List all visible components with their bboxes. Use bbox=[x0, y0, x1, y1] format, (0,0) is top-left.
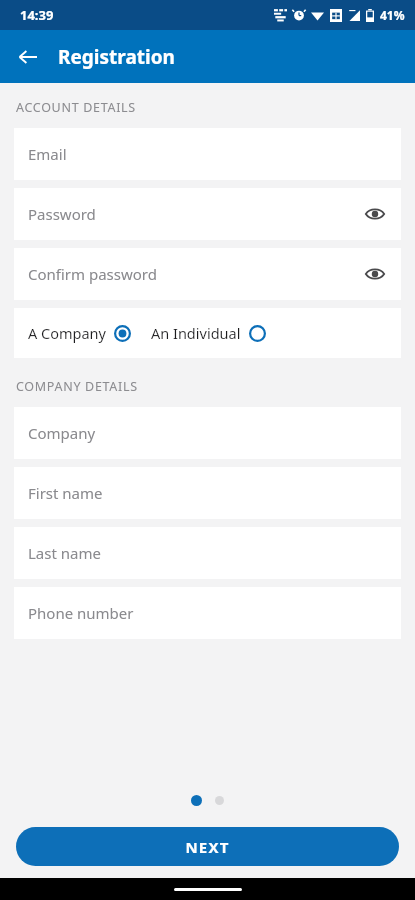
staticText: Email bbox=[28, 144, 67, 164]
button[interactable]: Back bbox=[10, 39, 46, 75]
staticText: Confirm password bbox=[28, 264, 157, 284]
staticText: Password bbox=[28, 204, 96, 224]
staticText: First name bbox=[28, 483, 103, 503]
staticText: 41% bbox=[380, 7, 405, 23]
button[interactable]: First name bbox=[14, 467, 401, 519]
staticText: Registration bbox=[58, 44, 175, 70]
button[interactable]: Confirm password bbox=[14, 248, 401, 300]
button[interactable]: NEXT bbox=[16, 827, 399, 866]
staticText: A Company bbox=[28, 323, 106, 343]
button[interactable]: Show password bbox=[357, 196, 393, 232]
button[interactable]: Password bbox=[14, 188, 401, 240]
button[interactable]: Phone number bbox=[14, 587, 401, 639]
button[interactable]: Email bbox=[14, 128, 401, 180]
staticText: An Individual bbox=[151, 323, 241, 343]
staticText: Phone number bbox=[28, 603, 134, 623]
staticText: 14:39 bbox=[20, 6, 54, 24]
button[interactable]: Last name bbox=[14, 527, 401, 579]
staticText: Last name bbox=[28, 543, 101, 563]
button[interactable]: Show password bbox=[357, 256, 393, 292]
button[interactable]: Company bbox=[14, 407, 401, 459]
button[interactable]: An Individual bbox=[147, 319, 270, 347]
staticText: COMPANY DETAILS bbox=[16, 378, 138, 395]
staticText: ACCOUNT DETAILS bbox=[16, 99, 136, 116]
staticText: NEXT bbox=[185, 837, 230, 857]
button[interactable]: A Company bbox=[24, 319, 135, 347]
staticText: Company bbox=[28, 423, 96, 443]
